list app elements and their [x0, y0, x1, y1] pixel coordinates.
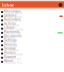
button[interactable]: Inbox: [0, 2, 13, 8]
button[interactable]: Activity: [0, 22, 64, 27]
staticText: Completed: [4, 32, 21, 35]
button[interactable]: Payments: [0, 31, 64, 35]
button[interactable]: Profile: [58, 3, 64, 7]
staticText: Activity: [4, 22, 16, 25]
staticText: Tap to open: [4, 11, 23, 15]
staticText: Saved items: [4, 28, 24, 31]
staticText: Privacy: [4, 51, 16, 54]
staticText: Library: [4, 26, 15, 29]
staticText: Yesterday: [4, 24, 20, 27]
staticText: 2 linked: [4, 44, 17, 48]
staticText: Updates: [4, 14, 17, 17]
button[interactable]: Messages: [0, 10, 64, 14]
staticText: Devices: [4, 43, 17, 46]
button[interactable]: Documents: [0, 35, 64, 39]
staticText: Support: [4, 55, 16, 59]
button[interactable]: Support: [0, 56, 64, 60]
button[interactable]: Updates: [0, 14, 64, 18]
staticText: General: [4, 40, 16, 44]
button[interactable]: About: [0, 60, 64, 64]
button[interactable]: Privacy: [0, 51, 64, 56]
button[interactable]: Settings: [0, 39, 64, 43]
button[interactable]: Library: [0, 27, 64, 31]
staticText: Today at 9: [4, 19, 21, 23]
staticText: Contact us: [4, 57, 21, 60]
staticText: Payments: [4, 30, 20, 34]
button[interactable]: Reminders: [0, 18, 64, 22]
staticText: Review now: [4, 53, 22, 56]
staticText: 14 GB free: [4, 49, 19, 52]
button[interactable]: Devices: [0, 43, 64, 47]
staticText: About: [4, 59, 13, 63]
staticText: Version 4.2: [4, 61, 22, 64]
staticText: Storage: [4, 47, 16, 50]
staticText: Shared: [4, 36, 15, 40]
staticText: Messages: [4, 9, 21, 13]
staticText: Settings: [4, 38, 17, 42]
staticText: Inbox: [1, 2, 13, 8]
button[interactable]: Storage: [0, 47, 64, 51]
staticText: 3 new items: [4, 15, 23, 19]
staticText: Documents: [4, 34, 22, 38]
staticText: Reminders: [4, 18, 21, 21]
